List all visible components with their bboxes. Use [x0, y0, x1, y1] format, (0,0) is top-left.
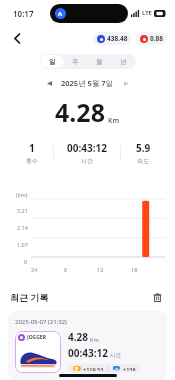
- staticText: 2025년 5월 7일: [61, 78, 114, 88]
- staticText: Km: [90, 336, 99, 343]
- staticText: LTE: [142, 9, 152, 17]
- staticText: 일: [49, 58, 56, 66]
- staticText: 10:17: [13, 8, 34, 19]
- staticText: 시간: [81, 157, 93, 165]
- staticText: P: [75, 366, 79, 371]
- button[interactable]: 일: [41, 55, 64, 68]
- staticText: +119.53: [83, 366, 104, 371]
- staticText: 438.48: [107, 34, 128, 43]
- staticText: 횟수: [26, 157, 38, 165]
- staticText: +138: [123, 366, 136, 371]
- staticText: 5.9: [136, 141, 151, 155]
- button[interactable]: Back: [6, 27, 28, 49]
- staticText: 18: [131, 266, 138, 273]
- staticText: (km): [16, 191, 28, 198]
- staticText: 4.28: [55, 95, 105, 129]
- staticText: A: [58, 10, 63, 18]
- button[interactable]: P: [68, 364, 141, 373]
- staticText: 6: [64, 266, 68, 273]
- staticText: 00:43:12: [68, 346, 108, 360]
- button[interactable]: 년: [111, 55, 135, 68]
- staticText: 0.88: [150, 34, 163, 43]
- staticText: 1.07: [17, 241, 28, 248]
- button[interactable]: Jogger shoe: [15, 331, 61, 373]
- staticText: 주: [72, 58, 79, 66]
- staticText: 12: [97, 266, 104, 273]
- button[interactable]: Next day: [120, 77, 132, 89]
- staticText: 시간: [110, 352, 121, 359]
- staticText: 년: [120, 58, 127, 66]
- staticText: 3.21: [17, 207, 28, 214]
- staticText: 24: [31, 266, 38, 273]
- staticText: 00:43:12: [67, 141, 107, 155]
- button[interactable]: 2025-05-07 (21:32): [8, 311, 167, 380]
- staticText: 0: [24, 258, 28, 265]
- staticText: 최근 기록: [10, 291, 49, 303]
- staticText: 2.14: [17, 224, 28, 231]
- staticText: Km: [108, 116, 120, 126]
- staticText: 1: [29, 141, 35, 155]
- button[interactable]: 438.48: [93, 32, 132, 45]
- staticText: 월: [96, 58, 103, 66]
- staticText: 4.28: [68, 330, 88, 344]
- button[interactable]: 0.88: [136, 32, 167, 45]
- staticText: 2025-05-07 (21:32): [15, 318, 67, 326]
- staticText: JOGGER: [27, 334, 46, 341]
- button[interactable]: 월: [87, 55, 111, 68]
- button[interactable]: 주: [64, 55, 87, 68]
- staticText: 속도: [137, 157, 149, 165]
- button[interactable]: Delete: [149, 289, 165, 305]
- button[interactable]: Previous day: [43, 77, 55, 89]
